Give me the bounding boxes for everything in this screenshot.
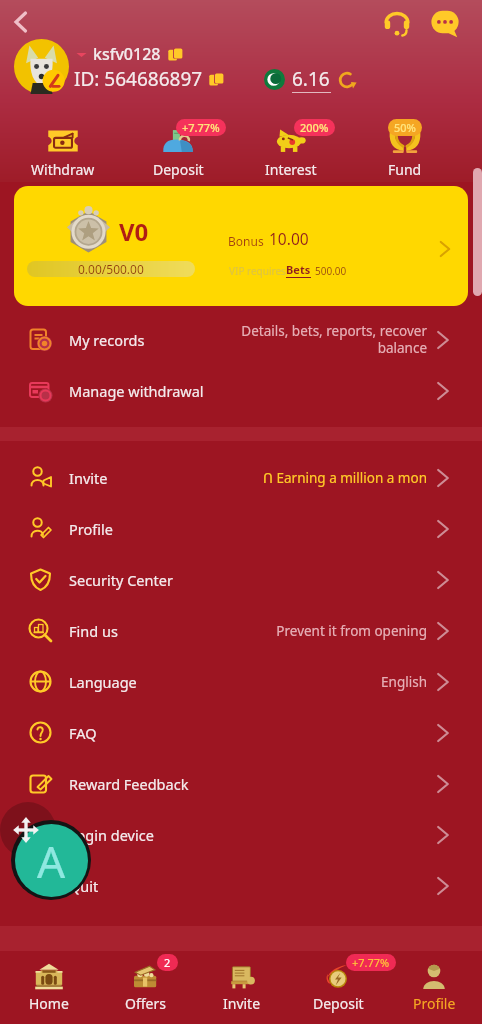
staticText: V0 <box>119 215 149 248</box>
staticText: +7.77% <box>182 120 220 135</box>
staticText: ksfv0128 <box>93 43 161 65</box>
staticText: ꓵ Earning a million a mon <box>263 469 427 487</box>
button[interactable]: Invite <box>0 452 482 503</box>
staticText: Invite <box>69 468 108 488</box>
button[interactable]: Find us <box>0 605 482 656</box>
button[interactable]: Language <box>0 656 482 707</box>
button[interactable]: Profile <box>0 503 482 554</box>
button[interactable]: +7.77% <box>290 962 386 1013</box>
staticText: Home <box>29 994 69 1013</box>
staticText: ID: 564686897 <box>74 66 203 92</box>
staticText: Profile <box>69 519 113 539</box>
button[interactable]: Copy username <box>168 47 183 62</box>
staticText: Reward Feedback <box>69 774 189 794</box>
staticText: 10.00 <box>269 228 309 249</box>
staticText: 500.00 <box>315 264 347 278</box>
button[interactable]: Reward Feedback <box>0 758 482 809</box>
staticText: Withdraw <box>31 160 95 179</box>
button[interactable]: Quit <box>0 860 482 911</box>
staticText: Details, bets, reports, recover balance <box>241 322 427 357</box>
button[interactable]: Customer service <box>380 6 414 40</box>
staticText: Fund <box>388 160 422 179</box>
staticText: FAQ <box>69 723 97 743</box>
staticText: Login device <box>69 825 154 845</box>
button[interactable]: Accessibility menu <box>15 824 88 897</box>
staticText: Manage withdrawal <box>69 381 204 401</box>
button[interactable]: Security Center <box>0 554 482 605</box>
staticText: Offers <box>125 994 166 1013</box>
staticText: 6.16 <box>292 66 330 92</box>
button[interactable]: Back <box>2 4 38 40</box>
button[interactable]: +7.77% <box>130 126 226 179</box>
button[interactable]: Login device <box>0 809 482 860</box>
button[interactable]: Profile <box>386 962 482 1013</box>
staticText: Deposit <box>153 160 204 179</box>
staticText: English <box>381 673 427 691</box>
staticText: VIP requires <box>229 264 286 278</box>
button[interactable]: 50% <box>357 126 453 179</box>
staticText: Bets <box>286 262 311 277</box>
button[interactable]: Refresh balance <box>337 70 357 90</box>
staticText: Prevent it from opening <box>276 622 427 640</box>
staticText: +7.77% <box>352 955 390 970</box>
staticText: A <box>37 831 66 891</box>
staticText: 0.00/500.00 <box>78 261 144 277</box>
staticText: Interest <box>265 160 317 179</box>
button[interactable]: 200% <box>243 126 339 179</box>
staticText: Find us <box>69 621 118 641</box>
staticText: Deposit <box>313 994 364 1013</box>
staticText: Invite <box>223 994 261 1013</box>
staticText: Quit <box>69 876 99 896</box>
button[interactable]: My records <box>0 314 482 365</box>
button[interactable]: FAQ <box>0 707 482 758</box>
staticText: 50% <box>394 120 416 135</box>
button[interactable]: Invite <box>194 962 290 1013</box>
staticText: Language <box>69 672 137 692</box>
button[interactable]: V0 <box>14 186 468 306</box>
button[interactable]: Messages <box>428 6 462 40</box>
button[interactable]: Withdraw <box>15 126 111 179</box>
staticText: Profile <box>413 994 456 1013</box>
staticText: Security Center <box>69 570 173 590</box>
staticText: 200% <box>300 120 329 135</box>
staticText: Bonus <box>228 233 264 249</box>
staticText: 2 <box>164 955 171 970</box>
button[interactable]: Manage withdrawal <box>0 365 482 416</box>
staticText: My records <box>69 330 145 350</box>
button[interactable]: Home <box>0 962 97 1013</box>
button[interactable]: 2 <box>97 962 194 1013</box>
button[interactable]: Copy ID <box>209 72 224 87</box>
